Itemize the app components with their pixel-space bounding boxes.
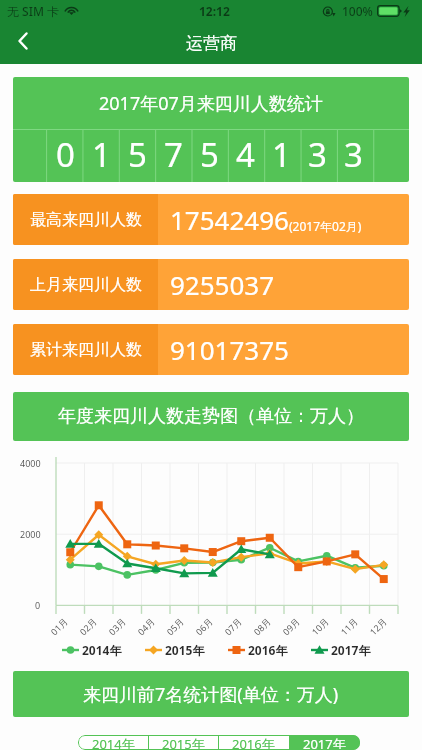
staticText: 07月 — [222, 615, 244, 637]
button[interactable]: 累计来四川人数 — [13, 324, 409, 375]
staticText: 2015年 — [162, 735, 205, 750]
staticText: 2000 — [20, 528, 41, 540]
staticText: 12:12 — [199, 3, 230, 19]
staticText: 3 — [344, 132, 363, 177]
staticText: 01月 — [48, 615, 70, 637]
staticText: 10月 — [309, 615, 331, 637]
staticText: 3 — [308, 132, 327, 177]
button[interactable]: 来四川前7名统计图(单位：万人) — [13, 671, 409, 717]
staticText: 1 — [272, 132, 291, 177]
staticText: 上月来四川人数 — [30, 275, 142, 295]
staticText: 5 — [200, 132, 219, 177]
button[interactable]: 2017年 — [311, 642, 371, 658]
button[interactable]: 年度来四川人数走势图（单位：万人） — [13, 392, 409, 441]
staticText: 无 SIM 卡 — [7, 3, 60, 19]
staticText: 4 — [236, 132, 255, 177]
staticText: 2017年07月来四川人数统计 — [99, 91, 323, 116]
button[interactable]: 2015年 — [145, 642, 205, 658]
button[interactable]: 2017年07月来四川人数统计 — [13, 77, 409, 182]
staticText: 9255037 — [170, 267, 275, 302]
staticText: 7 — [164, 132, 183, 177]
staticText: 17542496 — [170, 202, 289, 237]
staticText: 累计来四川人数 — [30, 340, 142, 360]
staticText: 0 — [56, 132, 75, 177]
staticText: 2014年 — [92, 735, 135, 750]
staticText: 2016年 — [248, 642, 288, 658]
button[interactable]: Back — [0, 22, 44, 64]
staticText: 12月 — [367, 615, 389, 637]
staticText: 2014年 — [82, 642, 122, 658]
staticText: 年度来四川人数走势图（单位：万人） — [58, 405, 364, 428]
button[interactable]: 2017年 — [289, 735, 360, 750]
staticText: 04月 — [135, 615, 157, 637]
staticText: 2017年 — [331, 642, 371, 658]
button[interactable]: 2016年 — [218, 735, 289, 750]
staticText: 运营商 — [186, 33, 237, 54]
staticText: 05月 — [164, 615, 186, 637]
staticText: 06月 — [193, 615, 215, 637]
staticText: 2016年 — [232, 735, 275, 750]
button[interactable]: 2016年 — [228, 642, 288, 658]
button[interactable]: 上月来四川人数 — [13, 259, 409, 310]
staticText: 0 — [35, 599, 41, 611]
button[interactable]: 2015年 — [148, 735, 218, 750]
staticText: 4000 — [20, 457, 41, 469]
staticText: 09月 — [280, 615, 302, 637]
button[interactable]: 2014年 — [78, 735, 148, 750]
staticText: 1 — [92, 132, 111, 177]
staticText: 100% — [342, 3, 373, 19]
staticText: 08月 — [251, 615, 273, 637]
staticText: 5 — [128, 132, 147, 177]
button[interactable]: 最高来四川人数 — [13, 194, 409, 245]
staticText: 91017375 — [170, 332, 289, 367]
staticText: 来四川前7名统计图(单位：万人) — [83, 682, 339, 707]
staticText: 最高来四川人数 — [30, 210, 142, 230]
staticText: 2015年 — [165, 642, 205, 658]
staticText: 02月 — [77, 615, 99, 637]
staticText: 2017年 — [303, 735, 346, 750]
staticText: 11月 — [338, 615, 360, 637]
staticText: 03月 — [106, 615, 128, 637]
staticText: (2017年02月) — [289, 218, 362, 234]
button[interactable]: 2014年 — [62, 642, 122, 658]
